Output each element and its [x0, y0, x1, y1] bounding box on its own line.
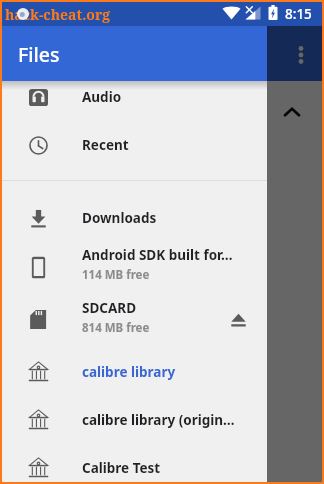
staticText: Downloads [82, 209, 157, 227]
staticText: Files [18, 41, 60, 68]
staticText: Android SDK built for… [82, 246, 233, 264]
button[interactable]: Calibre Test [2, 444, 267, 482]
staticText: calibre library (origin… [82, 411, 235, 429]
button[interactable]: Android SDK built for… [2, 238, 267, 290]
button[interactable]: calibre library (origin… [2, 396, 267, 444]
button[interactable]: SDCARD [2, 291, 267, 343]
staticText: 8:15 [285, 5, 312, 23]
button[interactable]: Downloads [2, 194, 267, 242]
staticText: Audio [82, 88, 122, 106]
staticText: SDCARD [82, 299, 137, 317]
staticText: calibre library [82, 363, 176, 381]
staticText: Recent [82, 136, 129, 154]
staticText: hack-cheat.org [5, 5, 111, 24]
staticText: Calibre Test [82, 459, 161, 477]
button[interactable]: calibre library [2, 348, 267, 396]
button[interactable]: More options [280, 34, 322, 76]
staticText: 114 MB free [82, 267, 150, 283]
button[interactable]: Audio [2, 81, 267, 121]
button[interactable]: Recent [2, 121, 267, 169]
staticText: 814 MB free [82, 320, 150, 336]
button[interactable]: Eject [221, 291, 267, 343]
button[interactable]: Scroll to top [271, 91, 313, 133]
